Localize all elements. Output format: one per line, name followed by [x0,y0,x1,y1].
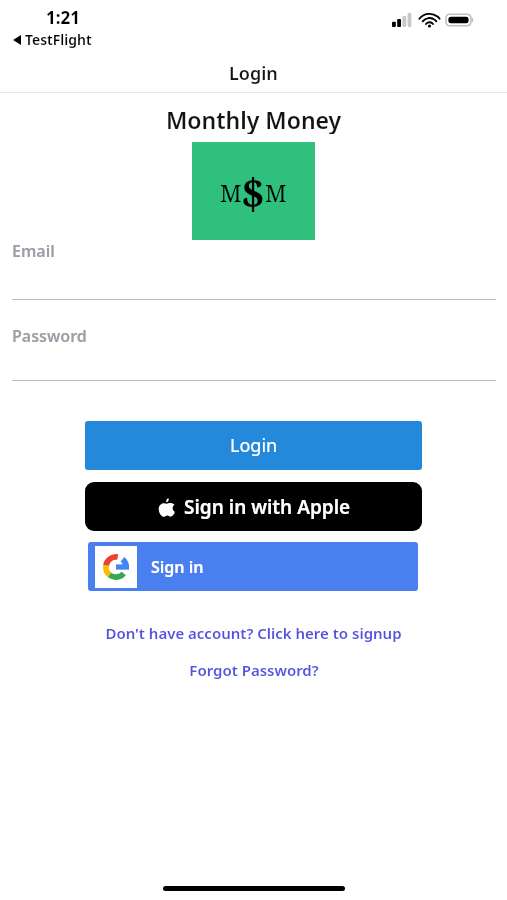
staticText: Sign in with Apple [184,494,351,520]
staticText: $ [241,164,265,221]
staticText: Forgot Password? [189,660,319,680]
button[interactable]: Sign in with Apple [85,482,422,531]
staticText: M [220,177,242,208]
staticText: Monthly Money [166,104,342,134]
button[interactable]: Sign in [88,542,418,591]
staticText: Login [230,433,278,458]
staticText: 1:21 [46,6,80,29]
staticText: Login [229,61,278,86]
staticText: Sign in [151,556,204,578]
button[interactable]: Back to TestFlight [13,30,92,49]
button[interactable]: Login [85,421,422,470]
staticText: TestFlight [25,30,92,49]
button[interactable]: Forgot Password? [0,657,507,683]
staticText: Password [12,325,87,347]
staticText: Don't have account? Click here to signup [105,623,402,643]
staticText: M [265,177,287,208]
button[interactable]: Don't have account? Click here to signup [0,620,507,646]
staticText: Email [12,240,55,262]
